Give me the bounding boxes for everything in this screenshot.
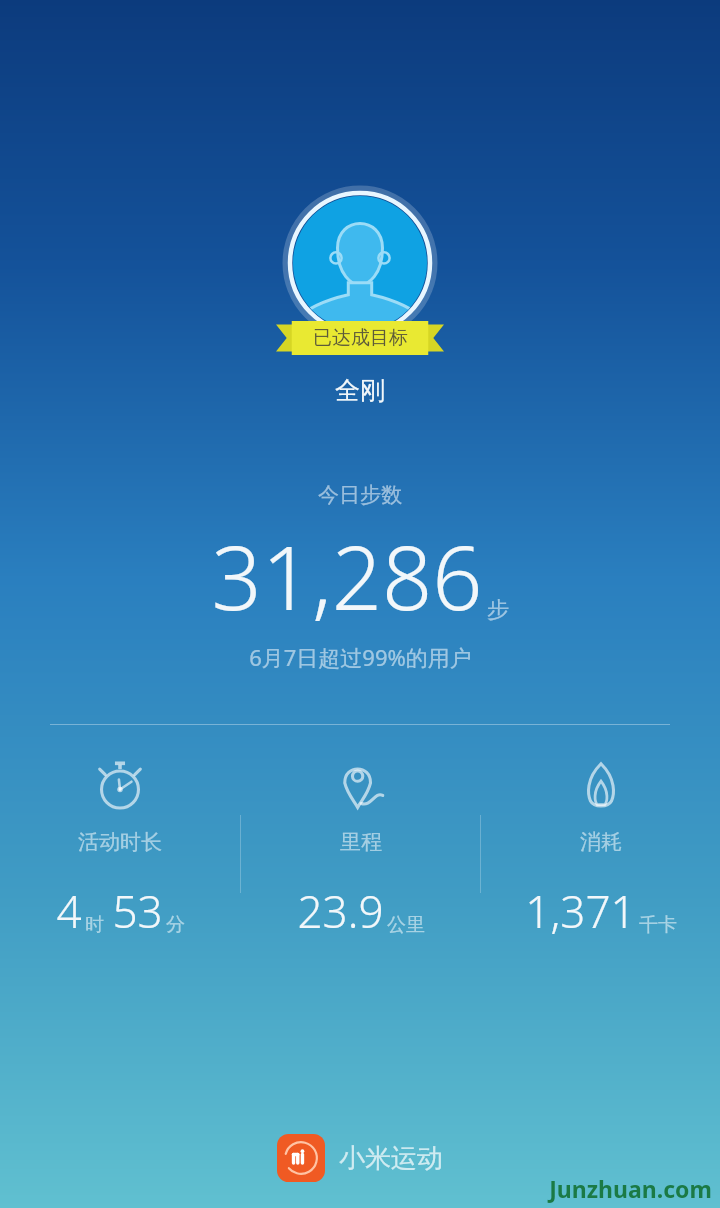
- staticText: 步: [487, 596, 509, 624]
- button[interactable]: Mi Fit logo: [265, 1126, 455, 1190]
- staticText: Junzhuan.com: [549, 1173, 712, 1204]
- staticText: 消耗: [580, 829, 622, 855]
- staticText: 已达成目标: [313, 326, 408, 350]
- button[interactable]: 里程: [241, 753, 480, 945]
- staticText: 今日步数: [318, 482, 402, 508]
- staticText: 23.9: [297, 881, 384, 941]
- staticText: 4: [56, 881, 82, 941]
- staticText: 1,371: [525, 881, 636, 941]
- staticText: 千卡: [639, 913, 677, 937]
- other: Mi Fit logo: [277, 1134, 325, 1182]
- staticText: 公里: [387, 913, 425, 937]
- staticText: 6月7日超过99%的用户: [249, 642, 472, 672]
- button[interactable]: 消耗: [481, 753, 720, 945]
- staticText: 时: [85, 913, 104, 937]
- button[interactable]: Profile avatar, goal achieved: [260, 188, 460, 363]
- staticText: 小米运动: [339, 1142, 443, 1175]
- staticText: 53: [112, 881, 163, 941]
- button[interactable]: 活动时长: [0, 753, 240, 945]
- staticText: 活动时长: [78, 829, 162, 855]
- staticText: 31,286: [211, 516, 483, 636]
- staticText: 全刚: [335, 375, 385, 406]
- staticText: 分: [166, 913, 185, 937]
- staticText: 里程: [340, 829, 382, 855]
